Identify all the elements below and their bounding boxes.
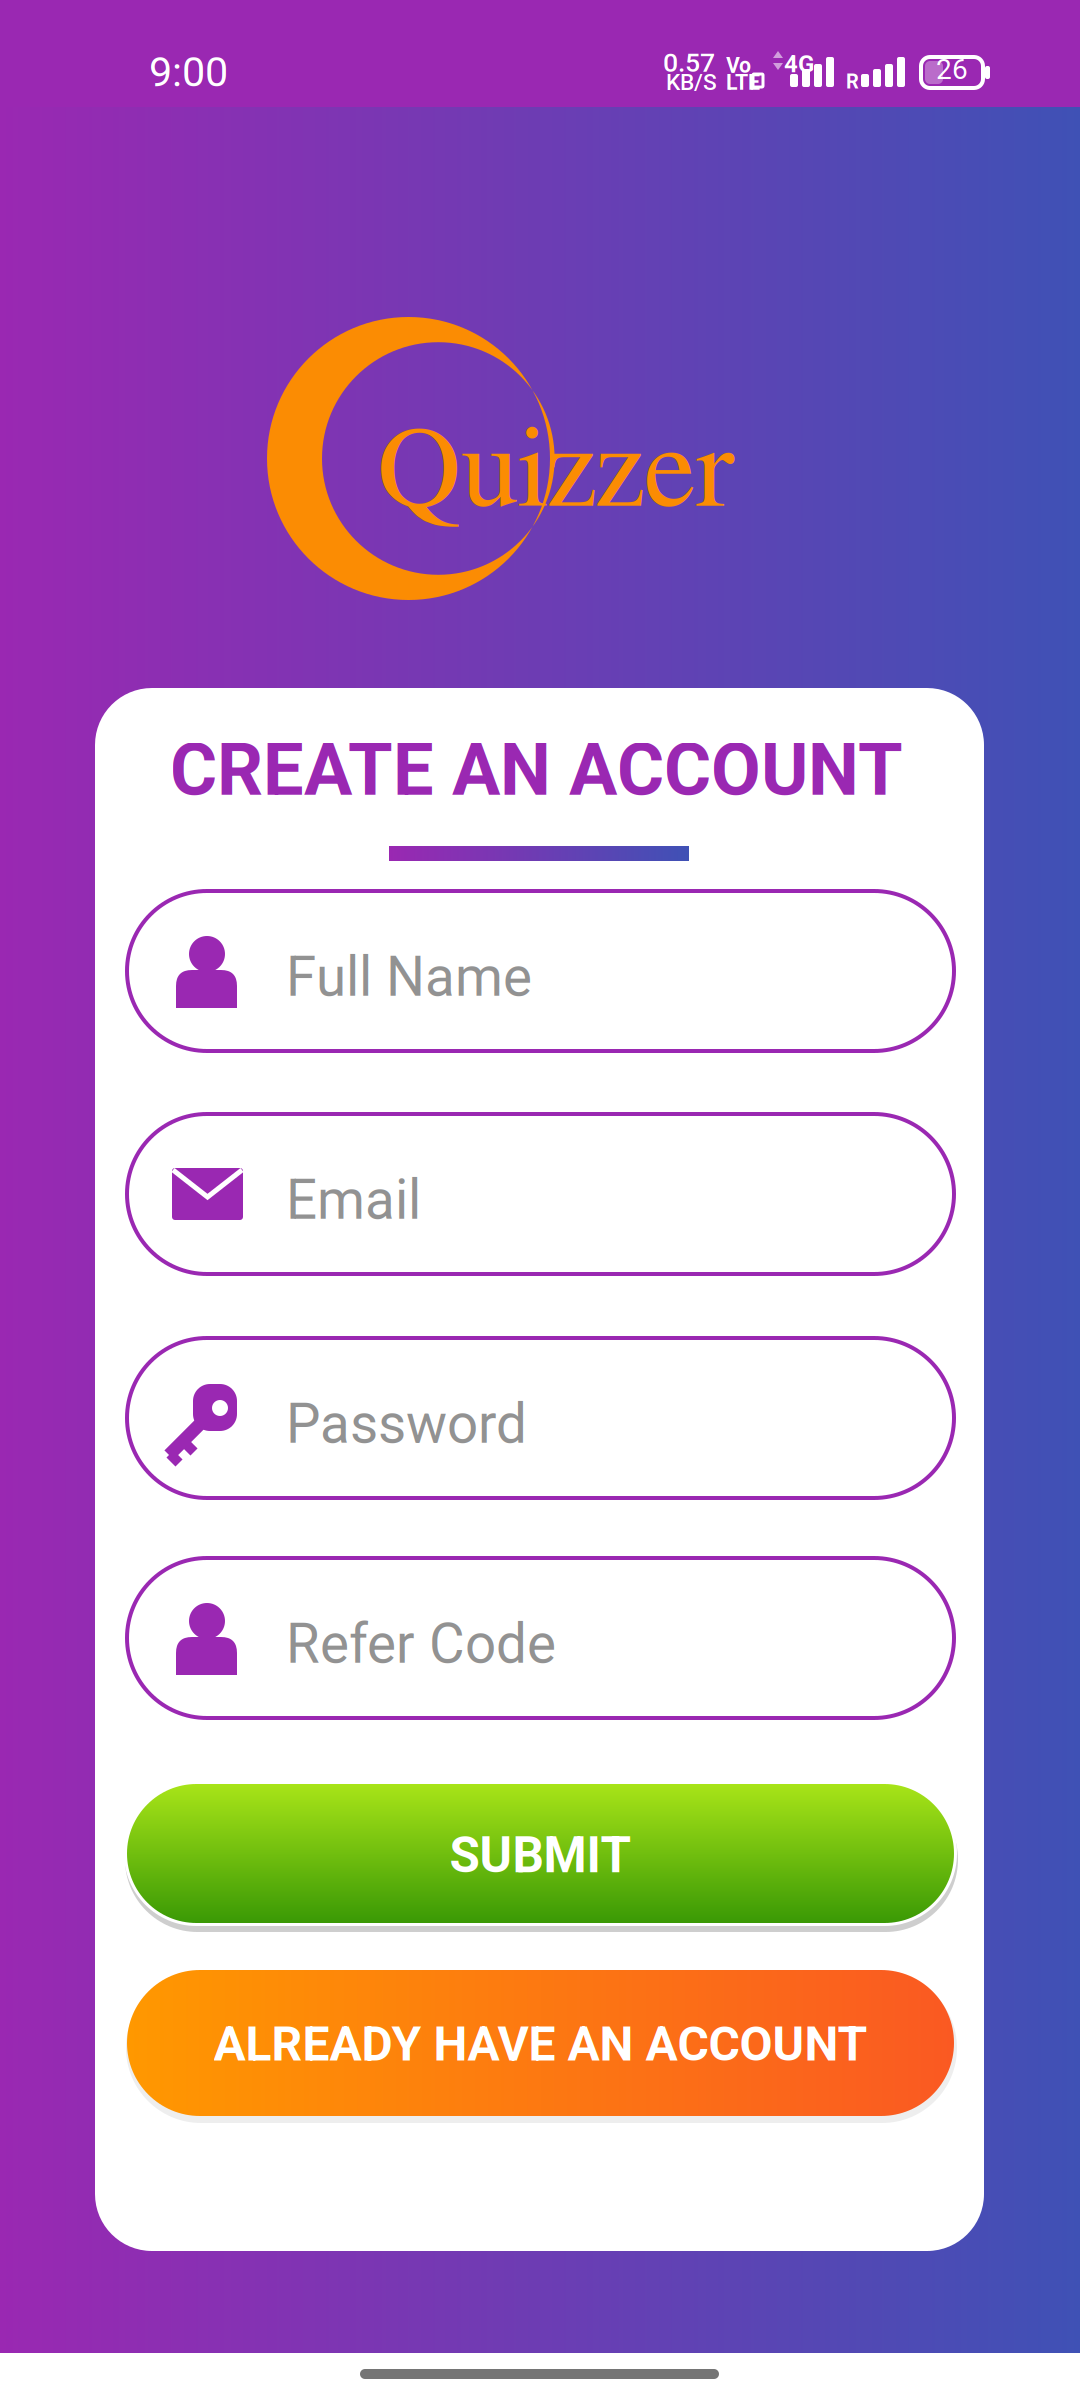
button[interactable]: Refer Code (127, 1558, 954, 1718)
button[interactable]: ALREADY HAVE AN ACCOUNT (127, 1970, 954, 2116)
staticText: Email (286, 1168, 421, 1232)
button[interactable]: Password (127, 1338, 954, 1498)
staticText: R (846, 70, 859, 93)
staticText: Refer Code (286, 1612, 556, 1676)
staticText: Vo (726, 53, 751, 78)
staticText: 4G (784, 50, 814, 78)
staticText: KB/S (666, 69, 717, 96)
staticText: 26 (936, 53, 968, 86)
button[interactable]: Full Name (127, 891, 954, 1051)
staticText: LTE (726, 70, 760, 95)
staticText: SUBMIT (449, 1827, 631, 1884)
button[interactable]: Email (127, 1114, 954, 1274)
button[interactable]: SUBMIT (127, 1784, 954, 1923)
staticText: CREATE AN ACCOUNT (170, 728, 903, 812)
staticText: 9:00 (149, 48, 228, 96)
staticText: Full Name (286, 945, 532, 1009)
staticText: ALREADY HAVE AN ACCOUNT (213, 2016, 867, 2072)
staticText: Quizzer (377, 413, 735, 529)
staticText: 0.57 (663, 47, 715, 78)
staticText: Password (286, 1392, 527, 1456)
